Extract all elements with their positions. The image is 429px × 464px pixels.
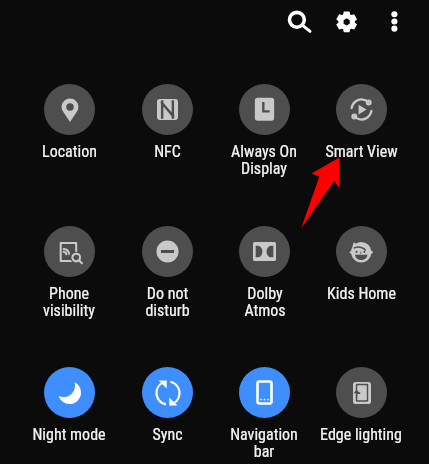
button[interactable]: Do not disturb: [119, 226, 215, 320]
staticText: Night mode: [32, 425, 106, 444]
staticText: Dolby Atmos: [244, 284, 286, 320]
button[interactable]: Night mode: [21, 367, 117, 444]
button[interactable]: Navigation bar: [216, 367, 312, 461]
button[interactable]: Kids Home: [313, 226, 409, 303]
staticText: Do not disturb: [145, 284, 190, 320]
button[interactable]: More options: [379, 6, 409, 36]
staticText: Sync: [152, 425, 183, 444]
staticText: Location: [42, 142, 97, 161]
button[interactable]: Location: [21, 84, 117, 161]
button[interactable]: Dolby Atmos: [216, 226, 312, 320]
staticText: Always On Display: [231, 142, 297, 178]
staticText: Edge lighting: [320, 425, 402, 444]
button[interactable]: Sync: [119, 367, 215, 444]
button[interactable]: Settings: [331, 6, 361, 36]
button[interactable]: Always On Display: [216, 84, 312, 178]
staticText: Navigation bar: [230, 425, 298, 461]
button[interactable]: Search: [283, 5, 313, 35]
staticText: Kids Home: [327, 284, 396, 303]
button[interactable]: Smart View: [313, 84, 409, 161]
button[interactable]: NFC: [119, 84, 215, 161]
button[interactable]: Phone visibility: [21, 226, 117, 320]
staticText: Phone visibility: [43, 284, 95, 320]
staticText: NFC: [154, 142, 181, 161]
button[interactable]: Edge lighting: [313, 367, 409, 444]
staticText: Smart View: [325, 142, 398, 161]
